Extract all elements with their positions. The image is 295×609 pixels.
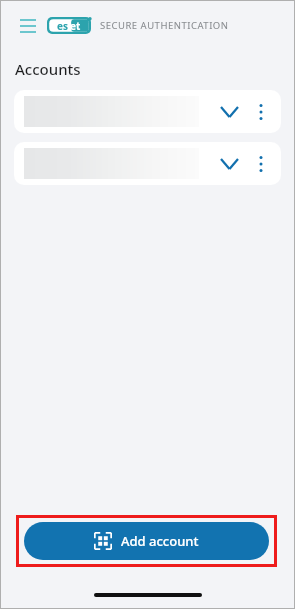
staticText: Accounts	[15, 59, 81, 79]
button[interactable]: More options	[249, 152, 273, 176]
staticText: es	[57, 19, 68, 33]
staticText: Add account	[121, 532, 199, 550]
button[interactable]: Expand account	[14, 142, 281, 185]
button[interactable]: ESET	[47, 17, 91, 34]
button[interactable]: Add account	[24, 522, 269, 560]
button[interactable]: Open navigation menu	[14, 12, 42, 40]
staticText: SECURE AUTHENTICATION	[100, 19, 229, 32]
button[interactable]: Expand account	[215, 98, 243, 126]
staticText: et	[70, 19, 81, 33]
button[interactable]: Expand account	[14, 90, 281, 133]
button[interactable]: More options	[249, 100, 273, 124]
button[interactable]: Expand account	[215, 150, 243, 178]
